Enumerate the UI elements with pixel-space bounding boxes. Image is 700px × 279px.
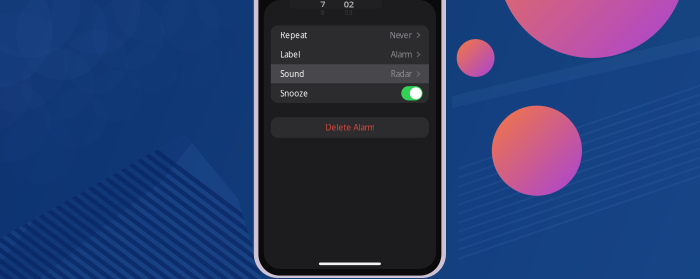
button[interactable]: Label: [271, 45, 429, 64]
button[interactable]: Repeat: [271, 25, 429, 45]
staticText: Delete Alarm: [325, 122, 374, 133]
staticText: Radar: [391, 69, 412, 79]
button[interactable]: Snooze: [401, 86, 422, 100]
staticText: 02: [344, 0, 354, 10]
staticText: Alarm: [391, 49, 412, 60]
staticText: Sound: [280, 69, 304, 79]
staticText: Never: [390, 30, 412, 40]
staticText: Snooze: [280, 88, 308, 99]
staticText: 7: [320, 0, 325, 10]
button[interactable]: Delete Alarm: [271, 117, 429, 138]
staticText: Label: [280, 49, 300, 60]
staticText: Repeat: [280, 30, 307, 40]
staticText: 8: [321, 8, 325, 17]
staticText: 03: [345, 8, 353, 17]
button[interactable]: Sound: [271, 64, 429, 84]
